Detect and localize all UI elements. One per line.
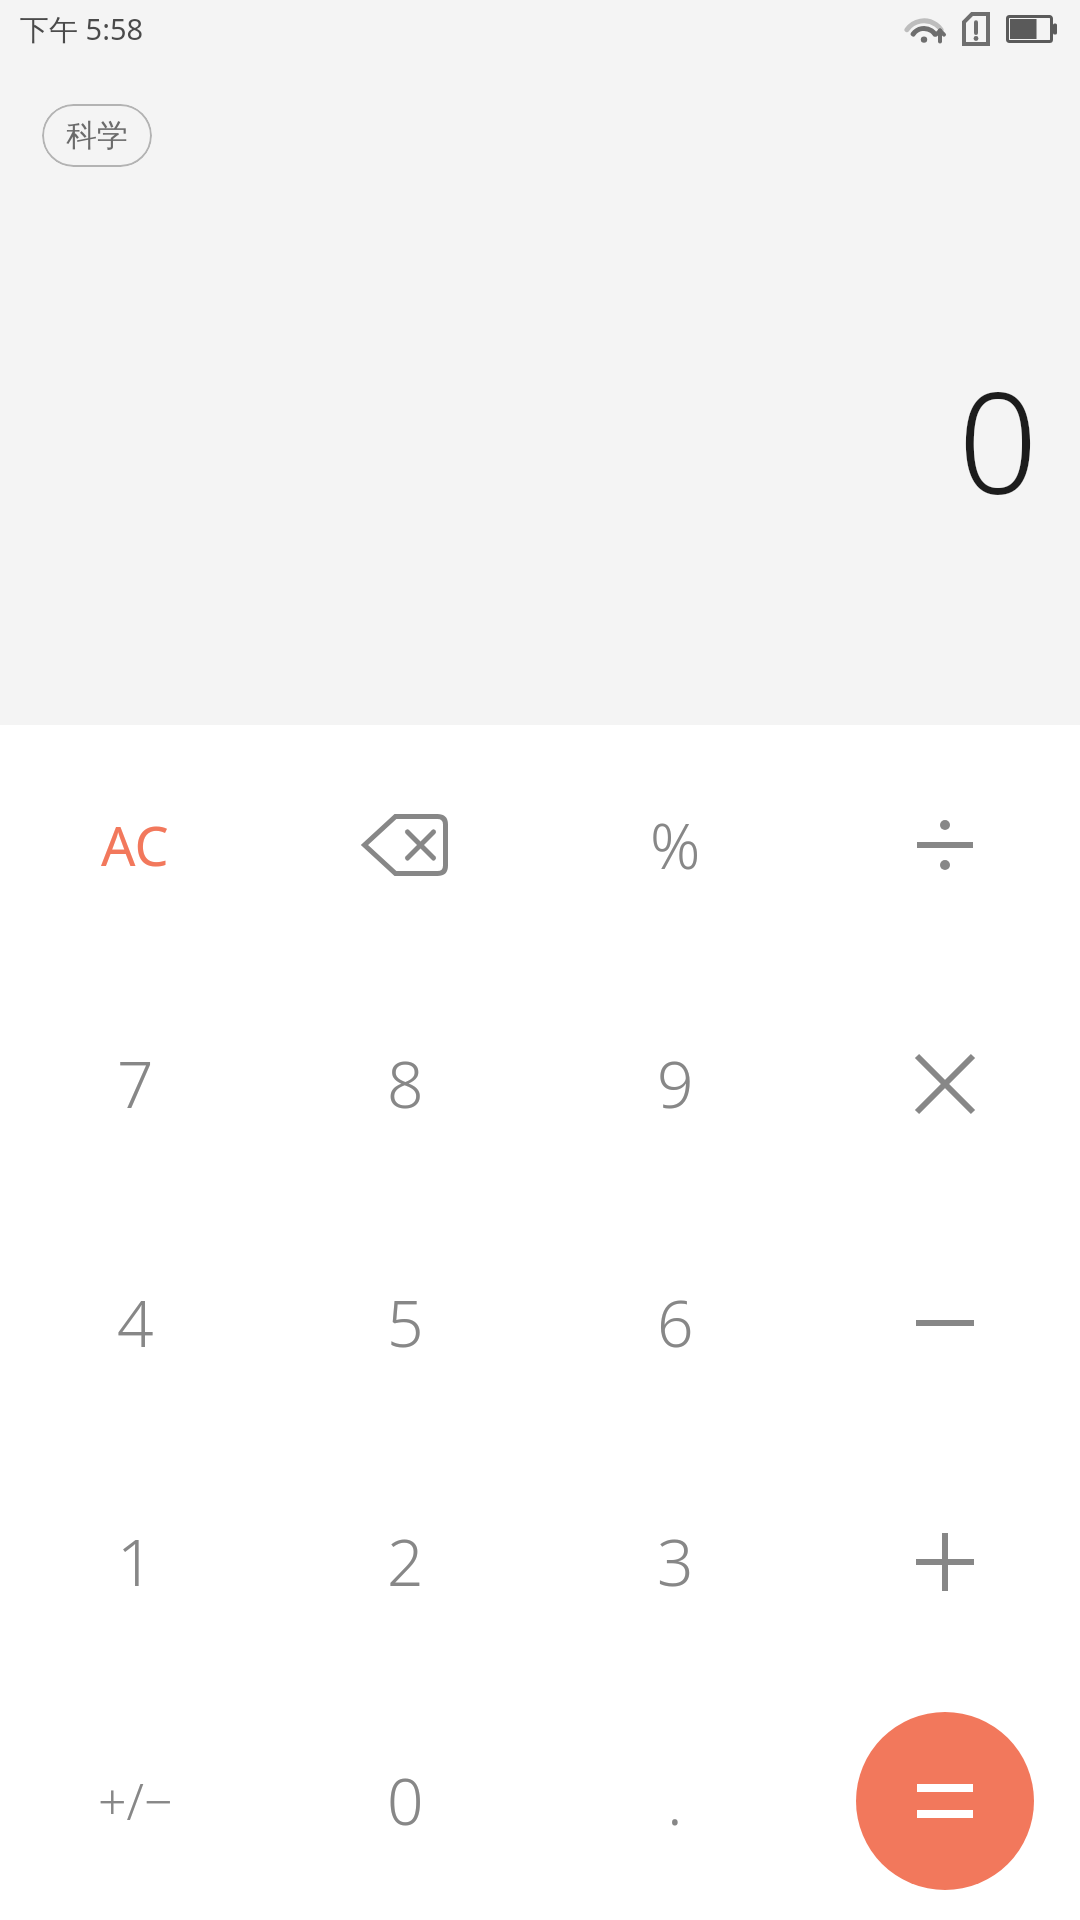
button[interactable]: Backspace [270, 725, 540, 964]
button[interactable]: Minus [810, 1203, 1080, 1442]
button[interactable]: 1 [0, 1442, 270, 1681]
button[interactable]: 科学 [42, 104, 152, 167]
button[interactable]: % [540, 725, 810, 964]
staticText: % [650, 803, 701, 887]
staticText: 下午 5:58 [20, 9, 144, 49]
staticText: 0 [958, 344, 1038, 535]
staticText: 8 [387, 1040, 424, 1127]
button[interactable]: 7 [0, 964, 270, 1203]
staticText: 4 [117, 1279, 154, 1366]
button[interactable]: 8 [270, 964, 540, 1203]
staticText: 7 [117, 1040, 154, 1127]
button[interactable]: 3 [540, 1442, 810, 1681]
button[interactable]: +/− [0, 1681, 270, 1920]
staticText: +/− [98, 1767, 173, 1835]
button[interactable]: 2 [270, 1442, 540, 1681]
staticText: 0 [387, 1757, 424, 1844]
button[interactable]: Multiply [810, 964, 1080, 1203]
button[interactable]: 0 [270, 1681, 540, 1920]
button[interactable]: 4 [0, 1203, 270, 1442]
button[interactable]: Divide [810, 725, 1080, 964]
staticText: 9 [657, 1040, 694, 1127]
button[interactable]: 9 [540, 964, 810, 1203]
button[interactable]: Plus [810, 1442, 1080, 1681]
staticText: 6 [657, 1279, 694, 1366]
button[interactable]: Equals [856, 1712, 1034, 1890]
staticText: . [667, 1757, 683, 1844]
staticText: 3 [657, 1518, 694, 1605]
staticText: 2 [387, 1518, 424, 1605]
staticText: AC [101, 808, 169, 882]
staticText: 5 [387, 1279, 424, 1366]
button[interactable]: 6 [540, 1203, 810, 1442]
staticText: 科学 [66, 116, 128, 155]
button[interactable]: 5 [270, 1203, 540, 1442]
button[interactable]: AC [0, 725, 270, 964]
staticText: 1 [117, 1518, 154, 1605]
